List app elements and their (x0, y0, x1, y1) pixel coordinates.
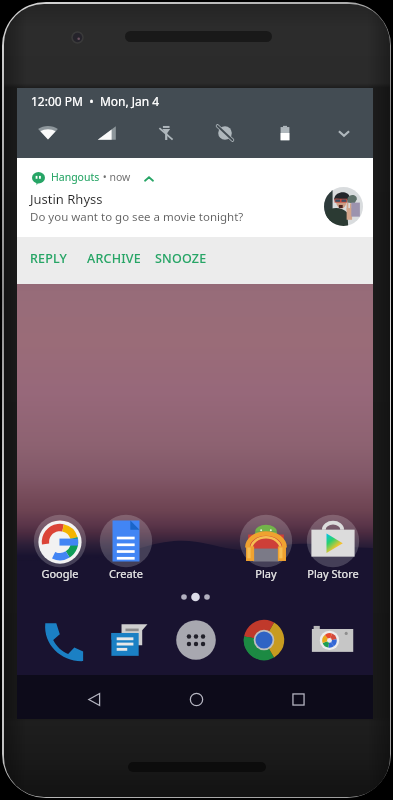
button[interactable]: Messages (107, 618, 151, 662)
staticText: SNOOZE (155, 250, 207, 267)
button[interactable]: SNOOZE (153, 244, 209, 273)
button[interactable]: Recents (282, 683, 314, 715)
button[interactable]: Google (33, 514, 87, 580)
button[interactable]: Phone (40, 618, 84, 662)
staticText: Create (109, 566, 143, 581)
staticText: ARCHIVE (87, 250, 141, 267)
staticText: Google (41, 566, 79, 581)
button[interactable]: Play Store (306, 514, 360, 580)
button[interactable]: Create (99, 514, 153, 580)
button[interactable]: ARCHIVE (85, 244, 143, 273)
button[interactable]: Camera (311, 618, 355, 662)
staticText: Play (255, 566, 277, 581)
button[interactable]: Chrome (242, 618, 286, 662)
button[interactable]: Play (239, 514, 293, 580)
staticText: Do you want to go see a movie tonight? (30, 209, 244, 225)
button[interactable]: REPLY (28, 244, 70, 273)
button[interactable]: Home (180, 683, 212, 715)
staticText: Play Store (307, 566, 359, 581)
staticText: 12:00 PM • Mon, Jan 4 (31, 93, 160, 109)
staticText: Justin Rhyss (30, 190, 103, 208)
staticText: Hangouts (51, 170, 100, 184)
button[interactable]: All apps (174, 618, 218, 662)
staticText: • now (100, 170, 131, 184)
staticText: REPLY (30, 250, 68, 267)
button[interactable]: Back (78, 683, 110, 715)
